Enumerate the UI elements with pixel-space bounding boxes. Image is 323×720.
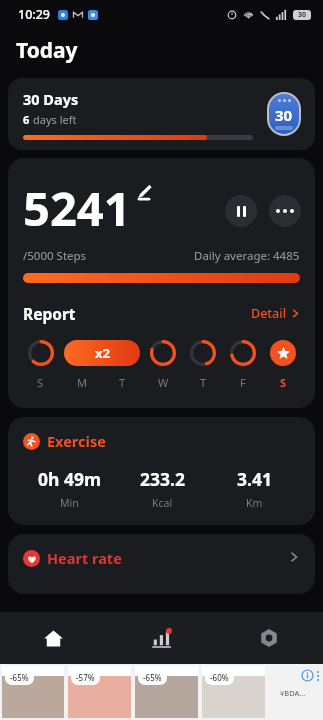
staticText: ¥BDA...	[280, 688, 306, 698]
staticText: 5241	[23, 176, 131, 240]
button[interactable]	[183, 338, 223, 368]
staticText: T	[119, 375, 126, 390]
staticText: 3.41	[237, 467, 272, 491]
staticText: S	[280, 375, 287, 390]
staticText: Heart rate	[47, 548, 122, 568]
staticText: 233.2	[140, 467, 185, 491]
staticText: 10:29	[18, 6, 51, 23]
staticText: 0h 49m	[38, 467, 102, 491]
staticText: Km	[246, 496, 263, 510]
staticText: Report	[23, 303, 76, 324]
button[interactable]: Statistics	[107, 612, 215, 664]
staticText: Detail	[251, 305, 287, 322]
button[interactable]: Pause	[225, 195, 257, 227]
button[interactable]: 30 Days	[8, 78, 315, 150]
staticText: Daily average: 4485	[194, 248, 300, 264]
button[interactable]: Report	[23, 303, 300, 324]
button[interactable]	[223, 338, 263, 368]
staticText: Exercise	[47, 431, 106, 451]
staticText: days left	[33, 112, 77, 127]
staticText: W	[158, 375, 169, 390]
button[interactable]	[143, 338, 183, 368]
button[interactable]: Heart rate	[8, 534, 315, 594]
staticText: 30 Days	[23, 89, 79, 109]
button[interactable]: More options	[269, 195, 301, 227]
button[interactable]: -60%	[202, 666, 265, 718]
staticText: F	[240, 375, 246, 390]
staticText: T	[200, 375, 207, 390]
button[interactable]: -65%	[2, 666, 64, 718]
staticText: Today	[16, 36, 78, 65]
staticText: -60%	[210, 672, 229, 683]
staticText: 30	[298, 10, 307, 20]
button[interactable]: -65%	[135, 666, 198, 718]
button[interactable]: Home	[0, 612, 107, 664]
button[interactable]: -57%	[68, 666, 131, 718]
button[interactable]: Ad options	[317, 671, 319, 681]
staticText: 30	[275, 105, 293, 125]
staticText: Min	[60, 496, 79, 510]
staticText: -65%	[143, 672, 162, 683]
button[interactable]: x2	[64, 340, 140, 366]
button[interactable]: Ad info	[302, 670, 313, 681]
button[interactable]: Settings	[215, 612, 323, 664]
staticText: -57%	[76, 672, 95, 683]
staticText: -65%	[10, 672, 29, 683]
staticText: M	[77, 375, 87, 390]
staticText: /5000 Steps	[23, 248, 87, 264]
button[interactable]: Edit step goal	[133, 182, 153, 202]
staticText: 6	[23, 112, 30, 127]
staticText: Kcal	[152, 496, 173, 510]
button[interactable]	[20, 338, 61, 368]
button[interactable]: Exercise	[8, 417, 315, 525]
staticText: x2	[95, 344, 110, 362]
staticText: S	[37, 375, 44, 390]
button[interactable]	[263, 338, 303, 368]
